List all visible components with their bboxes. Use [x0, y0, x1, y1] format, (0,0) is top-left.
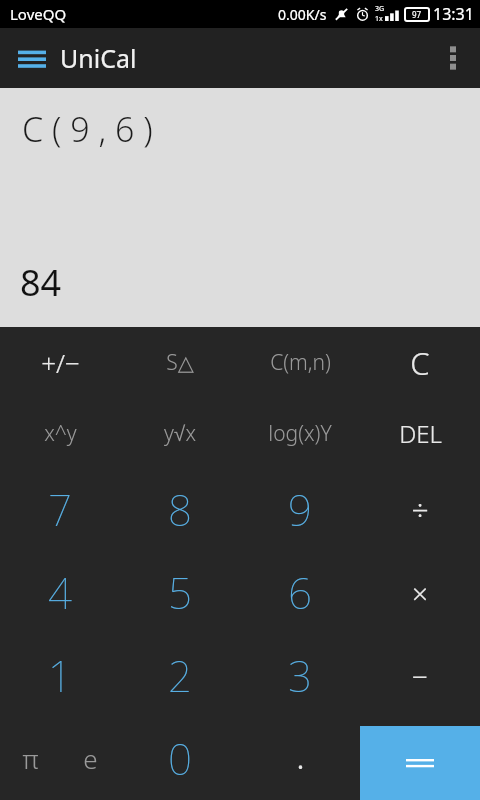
button[interactable]: More options: [426, 28, 480, 88]
staticText: .: [297, 741, 304, 776]
button[interactable]: x^y: [0, 398, 120, 468]
staticText: 13:31: [433, 3, 474, 25]
staticText: 97: [412, 9, 422, 20]
button[interactable]: 0: [120, 717, 240, 800]
staticText: 4: [48, 564, 72, 621]
staticText: y√x: [164, 419, 196, 448]
button[interactable]: e: [60, 717, 120, 800]
staticText: ÷: [411, 489, 429, 530]
staticText: C ( 9 , 6 ): [22, 106, 153, 152]
staticText: e: [83, 741, 98, 776]
staticText: x^y: [44, 419, 77, 448]
staticText: 0: [168, 730, 192, 787]
button[interactable]: 4: [0, 551, 120, 634]
staticText: +: [411, 738, 429, 779]
staticText: 1x: [375, 14, 383, 24]
staticText: 7: [48, 481, 72, 538]
button[interactable]: y√x: [120, 398, 240, 468]
staticText: C(m,n): [270, 348, 331, 377]
staticText: 3: [288, 647, 312, 704]
staticText: ×: [412, 574, 428, 612]
button[interactable]: 6: [240, 551, 360, 634]
button[interactable]: +/−: [0, 327, 120, 398]
staticText: 9: [288, 481, 312, 538]
button[interactable]: +: [360, 717, 480, 800]
staticText: DEL: [399, 417, 442, 450]
staticText: +/−: [41, 345, 80, 380]
staticText: 0.00K/s: [278, 5, 327, 24]
button[interactable]: Menu: [18, 41, 137, 75]
staticText: π: [22, 741, 39, 776]
button[interactable]: −: [360, 634, 480, 717]
button[interactable]: Equals: [360, 726, 480, 800]
staticText: 84: [20, 258, 62, 307]
staticText: 2: [168, 647, 192, 704]
staticText: 3G: [375, 4, 385, 14]
button[interactable]: 2: [120, 634, 240, 717]
button[interactable]: ÷: [360, 468, 480, 551]
button[interactable]: C(m,n): [240, 327, 360, 398]
staticText: 8: [168, 481, 192, 538]
button[interactable]: S△: [120, 327, 240, 398]
button[interactable]: 8: [120, 468, 240, 551]
staticText: −: [412, 657, 428, 695]
button[interactable]: C: [360, 327, 480, 398]
button[interactable]: ×: [360, 551, 480, 634]
button[interactable]: 7: [0, 468, 120, 551]
staticText: C: [410, 342, 430, 384]
button[interactable]: log(x)Y: [240, 398, 360, 468]
staticText: UniCal: [60, 41, 137, 75]
button[interactable]: DEL: [360, 398, 480, 468]
button[interactable]: π: [0, 717, 60, 800]
staticText: 6: [288, 564, 312, 621]
staticText: log(x)Y: [268, 419, 332, 448]
button[interactable]: .: [240, 717, 360, 800]
staticText: 5: [168, 564, 192, 621]
button[interactable]: 5: [120, 551, 240, 634]
button[interactable]: 3: [240, 634, 360, 717]
staticText: 1: [48, 647, 72, 704]
button[interactable]: 1: [0, 634, 120, 717]
staticText: LoveQQ: [10, 4, 67, 24]
staticText: S△: [166, 348, 194, 377]
button[interactable]: 9: [240, 468, 360, 551]
